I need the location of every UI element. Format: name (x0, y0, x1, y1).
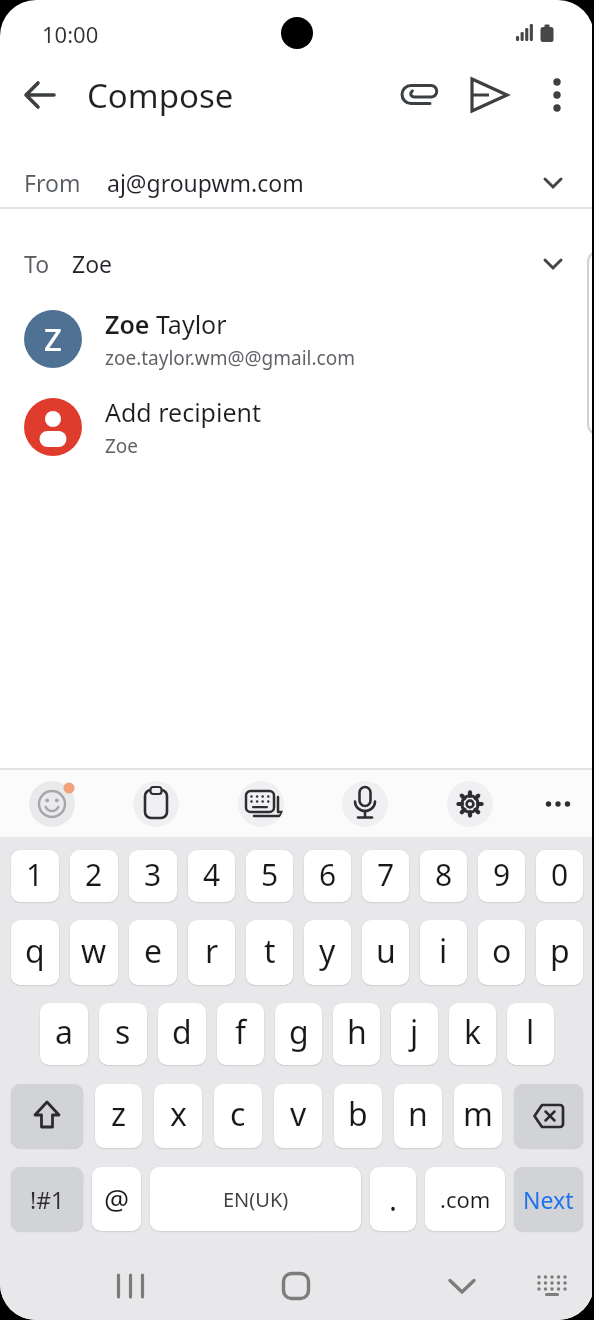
button[interactable] (535, 781, 581, 827)
button[interactable]: 8 (420, 850, 467, 902)
button[interactable]: Next (514, 1167, 583, 1231)
staticText: p (550, 929, 570, 973)
staticText: m (463, 1092, 493, 1136)
staticText: . (389, 1179, 398, 1220)
button[interactable]: f (217, 1003, 264, 1065)
staticText: x (170, 1092, 187, 1136)
button[interactable]: k (449, 1003, 496, 1065)
button[interactable]: q (11, 920, 59, 985)
staticText: Next (523, 1184, 574, 1215)
staticText: c (230, 1092, 246, 1136)
button[interactable]: 6 (304, 850, 351, 902)
button[interactable]: r (188, 920, 235, 985)
button[interactable]: o (478, 920, 525, 985)
staticText: Z (44, 318, 62, 360)
staticText: @ (104, 1180, 130, 1218)
button[interactable]: 4 (188, 850, 235, 902)
staticText: v (290, 1092, 307, 1136)
button[interactable]: p (536, 920, 583, 985)
button[interactable] (447, 781, 493, 827)
button[interactable] (533, 71, 581, 119)
staticText: r (205, 929, 219, 973)
button[interactable] (514, 1084, 583, 1148)
button[interactable]: s (99, 1003, 147, 1065)
staticText: 8 (435, 854, 453, 895)
button[interactable]: 9 (478, 850, 525, 902)
button[interactable]: b (334, 1084, 382, 1148)
staticText: k (464, 1010, 482, 1054)
button[interactable]: y (304, 920, 351, 985)
button[interactable] (394, 69, 446, 121)
button[interactable]: x (154, 1084, 202, 1148)
button[interactable]: l (507, 1003, 554, 1065)
staticText: f (235, 1010, 247, 1054)
button[interactable]: 7 (362, 850, 409, 902)
staticText: 3 (144, 854, 162, 895)
staticText: Add recipient (105, 395, 262, 429)
staticText: Zoe (105, 433, 139, 459)
button[interactable]: @ (92, 1167, 141, 1231)
button[interactable] (29, 781, 75, 827)
button[interactable]: 0 (536, 850, 583, 902)
button[interactable] (342, 781, 388, 827)
button[interactable] (0, 1231, 198, 1320)
button[interactable] (198, 1231, 396, 1320)
staticText: aj@groupwm.com (107, 167, 304, 198)
staticText: 7 (377, 854, 395, 895)
staticText: u (376, 929, 396, 973)
button[interactable]: !#1 (11, 1167, 83, 1231)
button[interactable] (16, 71, 64, 119)
button[interactable]: w (70, 920, 118, 985)
button[interactable]: From (0, 157, 594, 207)
staticText: o (492, 929, 512, 973)
button[interactable]: Add recipient (0, 388, 594, 466)
staticText: e (144, 929, 163, 973)
button[interactable]: n (394, 1084, 442, 1148)
staticText: n (408, 1092, 428, 1136)
staticText: g (289, 1010, 309, 1054)
button[interactable]: j (391, 1003, 438, 1065)
staticText: a (55, 1010, 73, 1054)
staticText: l (526, 1010, 535, 1054)
button[interactable]: c (214, 1084, 262, 1148)
button[interactable]: e (129, 920, 177, 985)
staticText: i (439, 929, 448, 973)
staticText: Compose (87, 73, 234, 118)
button[interactable]: a (40, 1003, 88, 1065)
button[interactable]: t (246, 920, 293, 985)
button[interactable]: m (454, 1084, 502, 1148)
button[interactable]: .com (425, 1167, 505, 1231)
button[interactable] (463, 69, 515, 121)
button[interactable]: u (362, 920, 409, 985)
button[interactable]: To (0, 239, 594, 287)
button[interactable]: z (95, 1084, 142, 1148)
button[interactable]: 5 (246, 850, 293, 902)
button[interactable] (11, 1084, 83, 1148)
button[interactable] (133, 781, 179, 827)
button[interactable]: h (333, 1003, 380, 1065)
staticText: 0 (551, 854, 569, 895)
button[interactable]: 2 (70, 850, 118, 902)
staticText: b (348, 1092, 368, 1136)
button[interactable] (238, 781, 284, 827)
staticText: j (410, 1010, 419, 1054)
button[interactable]: . (370, 1167, 416, 1231)
staticText: !#1 (30, 1184, 65, 1215)
button[interactable]: i (420, 920, 467, 985)
staticText: EN(UK) (223, 1186, 289, 1213)
staticText: 9 (493, 854, 511, 895)
button[interactable]: g (275, 1003, 322, 1065)
staticText: y (319, 929, 336, 973)
staticText: 4 (203, 854, 221, 895)
staticText: 1 (26, 854, 44, 895)
button[interactable]: Z (0, 300, 594, 378)
button[interactable]: EN(UK) (150, 1167, 361, 1231)
button[interactable]: 3 (129, 850, 177, 902)
staticText: From (24, 167, 81, 198)
staticText: 6 (319, 854, 337, 895)
button[interactable]: v (274, 1084, 322, 1148)
button[interactable] (396, 1231, 594, 1320)
button[interactable]: d (158, 1003, 206, 1065)
button[interactable]: 1 (11, 850, 59, 902)
staticText: 10:00 (42, 19, 99, 49)
